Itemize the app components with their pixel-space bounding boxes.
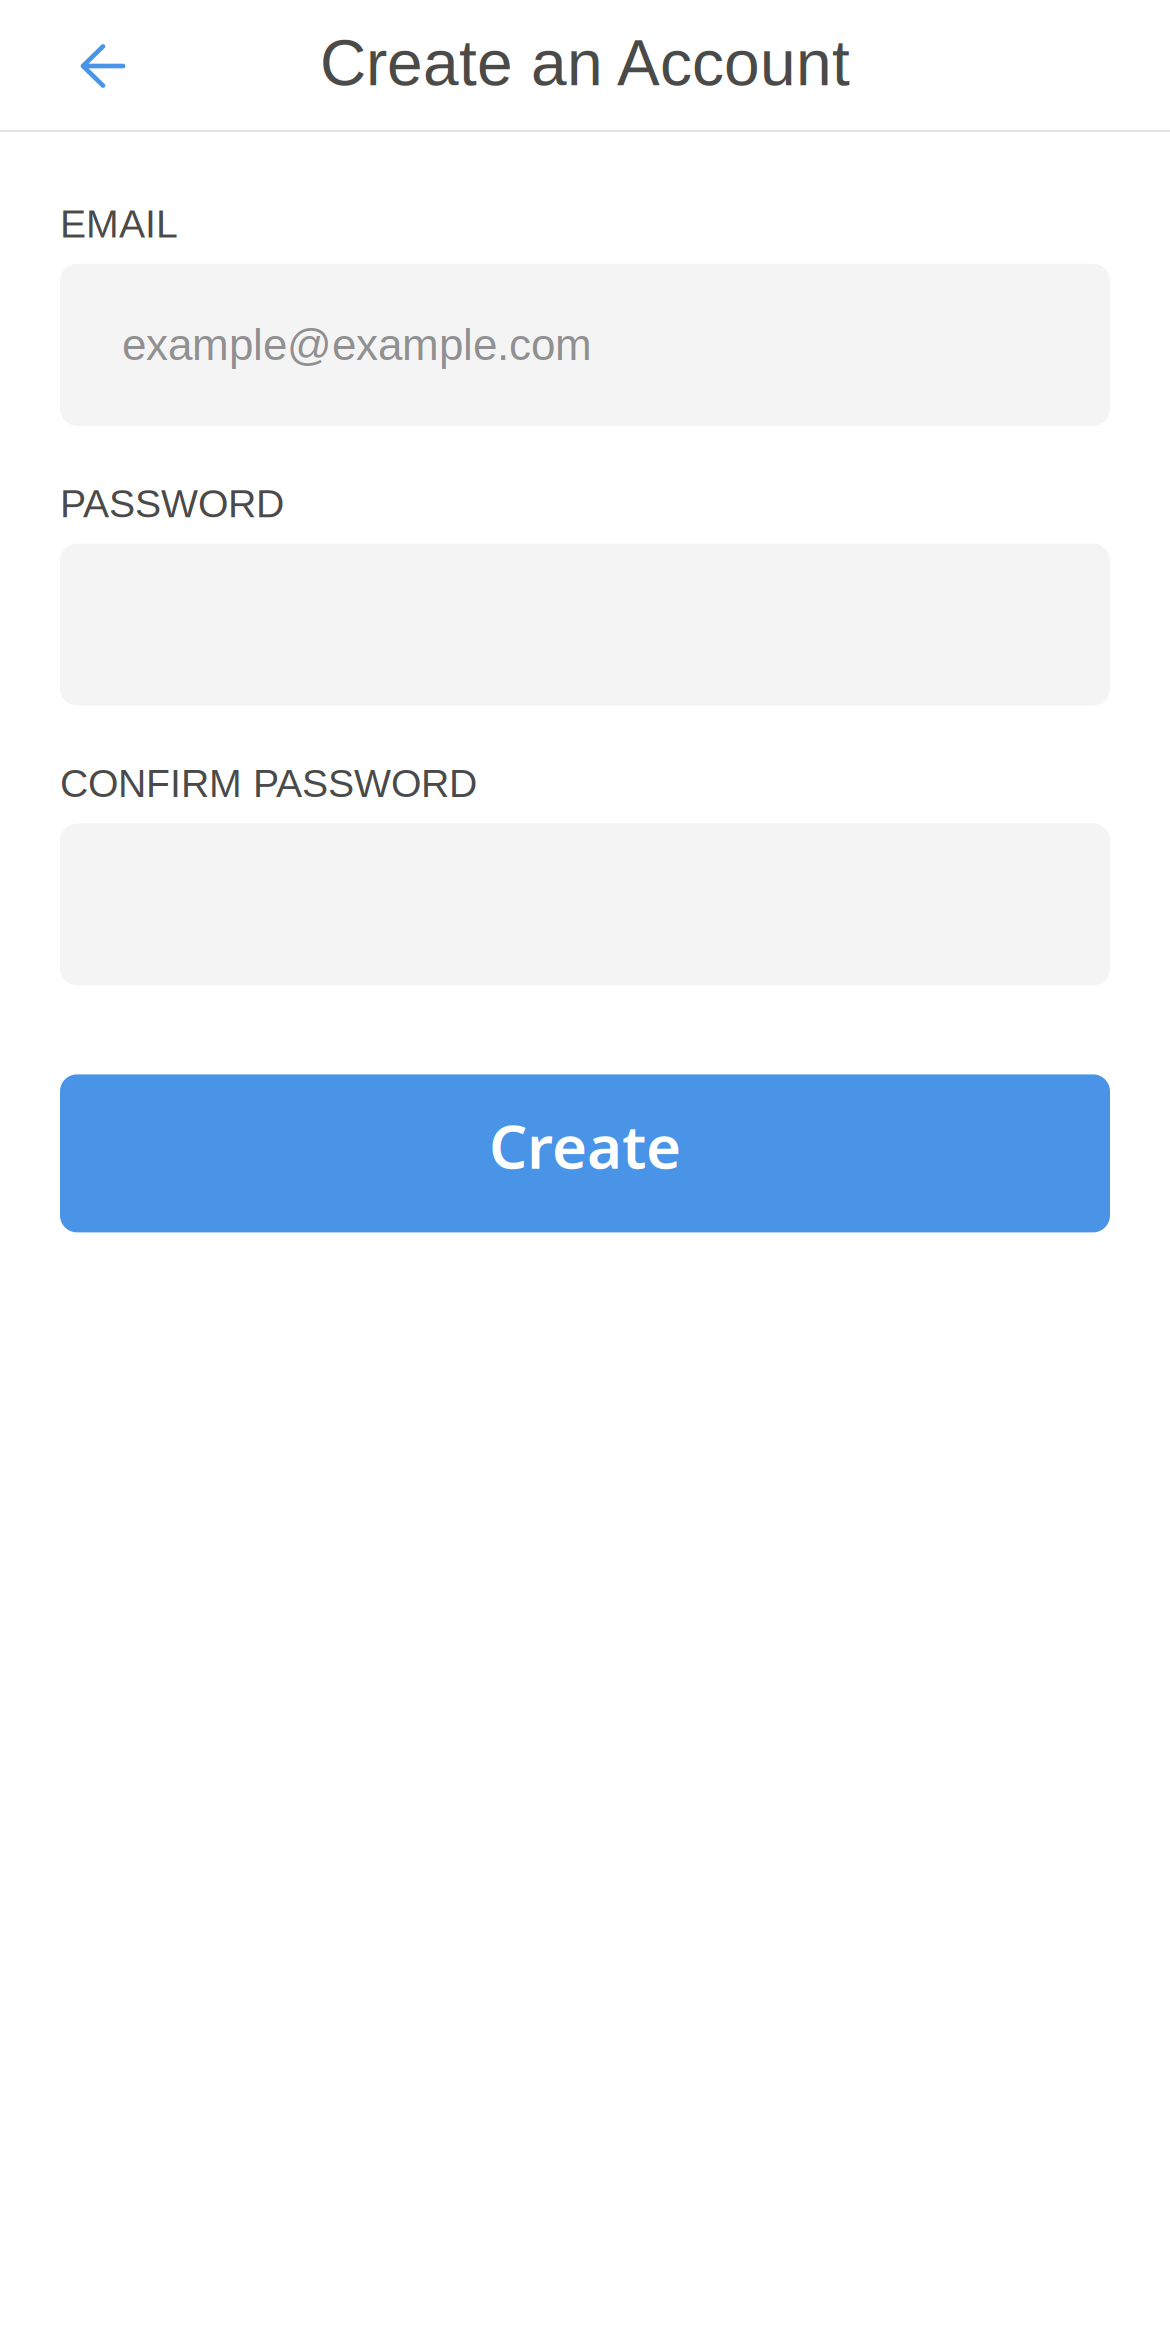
staticText: Create an Account [320, 27, 850, 99]
button[interactable]: Back [39, 2, 167, 130]
staticText: example@example.com [122, 320, 592, 369]
button[interactable]: Create [60, 1074, 1110, 1232]
staticText: EMAIL [60, 202, 178, 246]
button[interactable]: Email [60, 264, 1110, 426]
staticText: CONFIRM PASSWORD [60, 762, 477, 805]
staticText: PASSWORD [60, 482, 284, 526]
staticText: Create [489, 1104, 681, 1186]
